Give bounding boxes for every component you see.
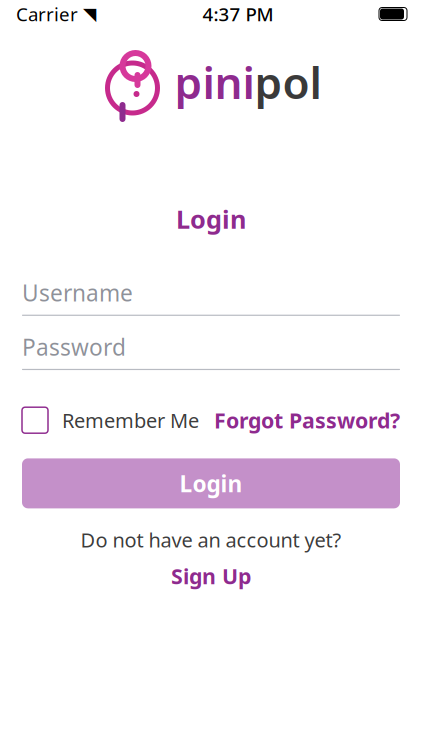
staticText: pini — [174, 53, 254, 111]
staticText: ◥ — [83, 4, 96, 24]
staticText: Password — [22, 332, 126, 362]
staticText: Forgot Password? — [214, 406, 400, 434]
staticText: Login — [176, 202, 246, 236]
staticText: Username — [22, 278, 133, 308]
staticText: Carrier — [16, 2, 78, 26]
staticText: Remember Me — [62, 407, 199, 433]
button[interactable]: Forgot Password? — [214, 406, 400, 434]
button[interactable]: Remember Me — [22, 407, 199, 433]
staticText: Do not have an account yet? — [80, 526, 341, 553]
button[interactable]: Login — [22, 458, 400, 508]
staticText: Login — [179, 468, 242, 498]
staticText: 4:37 PM — [202, 2, 273, 26]
staticText: pol — [254, 53, 321, 111]
staticText: Sign Up — [171, 562, 251, 590]
button[interactable]: Sign Up — [161, 559, 261, 593]
